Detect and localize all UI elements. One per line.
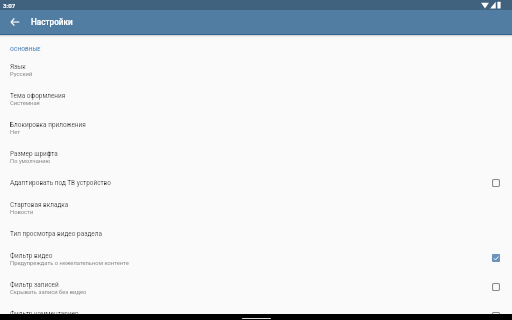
staticText: ОСНОВНЫЕ: [10, 46, 41, 52]
staticText: Адаптировать под ТВ устройство: [10, 179, 111, 187]
staticText: Русский: [10, 71, 33, 78]
staticText: Фильтр записей: [10, 281, 59, 289]
button[interactable]: Фильтр записей: [0, 274, 512, 303]
button[interactable]: Фильтр видео: [0, 245, 512, 274]
staticText: По умолчанию: [10, 158, 51, 165]
button[interactable]: Стартовая вкладка: [0, 194, 512, 223]
staticText: Блокировка приложения: [10, 121, 86, 129]
staticText: Язык: [10, 63, 26, 71]
staticText: Скрывать записи без видео: [10, 289, 87, 296]
staticText: Настройки: [31, 17, 73, 27]
button[interactable]: Язык: [0, 56, 512, 85]
staticText: Тема оформления: [10, 92, 66, 100]
staticText: Нет: [10, 129, 20, 136]
staticText: Фильтр видео: [10, 252, 53, 260]
button[interactable]: Размер шрифта: [0, 143, 512, 172]
staticText: Тип просмотра видео раздела: [10, 230, 102, 238]
staticText: Предупреждать о нежелательном контенте: [10, 260, 129, 267]
staticText: Размер шрифта: [10, 150, 58, 158]
button[interactable]: Блокировка приложения: [0, 114, 512, 143]
button[interactable]: Тип просмотра видео раздела: [0, 223, 512, 245]
staticText: 3:07: [3, 2, 16, 9]
button[interactable]: Фильтр комментариев: [0, 303, 512, 314]
staticText: Стартовая вкладка: [10, 201, 69, 209]
button[interactable]: Адаптировать под ТВ устройство: [0, 172, 512, 194]
staticText: Фильтр комментариев: [10, 310, 79, 314]
button[interactable]: Тема оформления: [0, 85, 512, 114]
staticText: Системная: [10, 100, 40, 107]
staticText: Новости: [10, 209, 34, 216]
button[interactable]: Back: [8, 15, 22, 29]
